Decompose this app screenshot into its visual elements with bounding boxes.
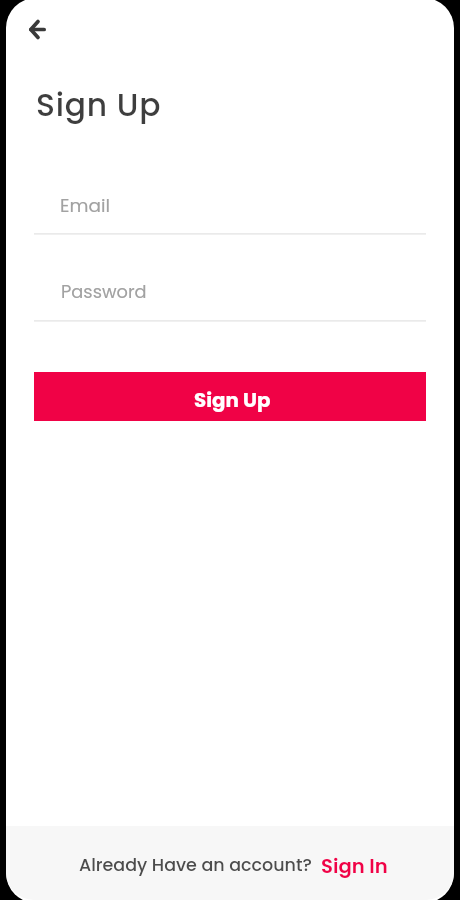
staticText: Already Have an account? (79, 853, 312, 878)
button[interactable]: Email (34, 180, 426, 234)
button[interactable]: Back (17, 9, 58, 50)
button[interactable]: Password (34, 267, 426, 321)
staticText: Password (61, 279, 147, 304)
staticText: Email (60, 193, 110, 219)
button[interactable]: Sign Up (34, 372, 426, 421)
staticText: Sign Up (194, 386, 271, 414)
staticText: Sign In (321, 852, 388, 879)
button[interactable]: Sign In (321, 852, 388, 879)
staticText: Sign Up (36, 83, 162, 127)
